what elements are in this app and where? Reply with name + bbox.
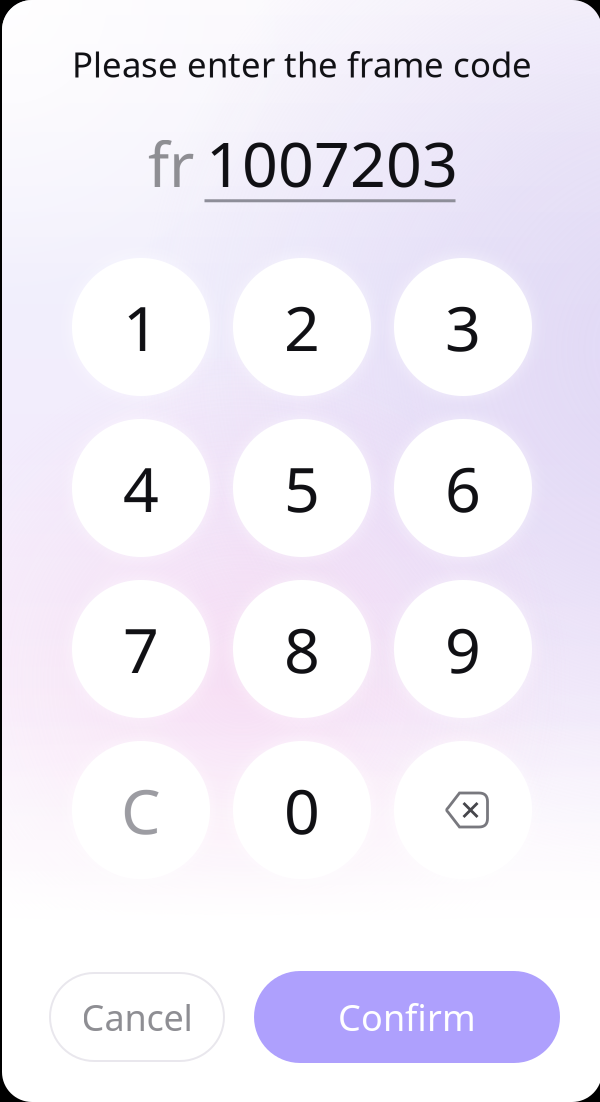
button[interactable]: 8 <box>233 580 371 718</box>
button[interactable]: Confirm <box>254 971 560 1063</box>
staticText: fr <box>148 123 194 204</box>
button[interactable]: 1 <box>72 258 210 396</box>
staticText: 7 <box>123 607 159 691</box>
button[interactable]: 6 <box>394 419 532 557</box>
staticText: 4 <box>123 446 159 530</box>
button[interactable]: 0 <box>233 741 371 879</box>
staticText: C <box>121 768 161 852</box>
staticText: Please enter the frame code <box>72 41 532 87</box>
staticText: 1 <box>123 285 159 369</box>
button[interactable]: 4 <box>72 419 210 557</box>
button[interactable]: Cancel <box>50 973 224 1061</box>
staticText: 9 <box>445 607 481 691</box>
staticText: 8 <box>284 607 320 691</box>
button[interactable]: C <box>72 741 210 879</box>
staticText: 6 <box>445 446 481 530</box>
button[interactable]: 7 <box>72 580 210 718</box>
staticText: 0 <box>284 768 320 852</box>
staticText: Confirm <box>338 993 476 1041</box>
staticText: 2 <box>284 285 320 369</box>
staticText: 5 <box>284 446 320 530</box>
button[interactable]: 9 <box>394 580 532 718</box>
button[interactable]: 5 <box>233 419 371 557</box>
button[interactable]: 3 <box>394 258 532 396</box>
staticText: 3 <box>445 285 481 369</box>
button[interactable]: 2 <box>233 258 371 396</box>
staticText: 1007203 <box>206 121 458 204</box>
staticText: Cancel <box>81 993 192 1041</box>
button[interactable]: Delete <box>394 741 532 879</box>
